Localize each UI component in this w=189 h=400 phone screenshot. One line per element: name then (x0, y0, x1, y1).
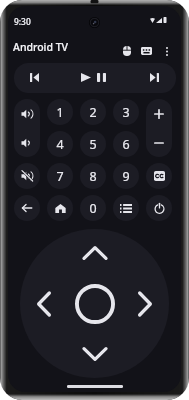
staticText: 3 (122, 104, 130, 121)
button[interactable]: Home (47, 195, 73, 221)
button[interactable]: Guide (113, 195, 139, 221)
staticText: 1 (56, 104, 64, 121)
button[interactable]: Channel up (146, 99, 172, 128)
button[interactable]: 4 (47, 131, 73, 157)
button[interactable]: Play pause (75, 63, 111, 92)
button[interactable]: Back (14, 195, 40, 221)
button[interactable]: 7 (47, 163, 73, 189)
button[interactable]: Channel down (146, 128, 172, 157)
staticText: 2 (89, 104, 97, 121)
button[interactable]: Touchpad (117, 41, 137, 61)
button[interactable]: 1 (47, 99, 73, 125)
button[interactable]: 5 (80, 131, 106, 157)
button[interactable]: Next (140, 63, 169, 92)
button[interactable]: 3 (113, 99, 139, 125)
staticText: 5 (89, 136, 97, 153)
button[interactable]: Volume down (14, 128, 40, 157)
button[interactable]: Mute (14, 163, 40, 189)
button[interactable]: 0 (80, 195, 106, 221)
staticText: 9 (122, 168, 130, 185)
button[interactable]: More options (157, 41, 177, 61)
button[interactable]: 9 (113, 163, 139, 189)
staticText: 8 (89, 168, 97, 185)
button[interactable]: Volume up (14, 99, 40, 128)
staticText: Android TV (13, 40, 69, 54)
staticText: 0 (89, 200, 97, 217)
button[interactable]: 8 (80, 163, 106, 189)
staticText: 9:30 (14, 16, 31, 27)
button[interactable]: Left (31, 286, 57, 322)
button[interactable]: Select (74, 283, 116, 325)
button[interactable]: Up (77, 240, 113, 266)
button[interactable]: Closed captions (146, 163, 172, 189)
button[interactable]: 6 (113, 131, 139, 157)
staticText: 6 (122, 136, 130, 153)
button[interactable]: Right (132, 286, 158, 322)
button[interactable]: Keyboard (136, 41, 156, 61)
button[interactable]: Previous (20, 63, 49, 92)
button[interactable]: Down (77, 341, 113, 367)
button[interactable]: 2 (80, 99, 106, 125)
staticText: 4 (56, 136, 64, 153)
button[interactable]: Power (146, 195, 172, 221)
staticText: 7 (56, 168, 64, 185)
